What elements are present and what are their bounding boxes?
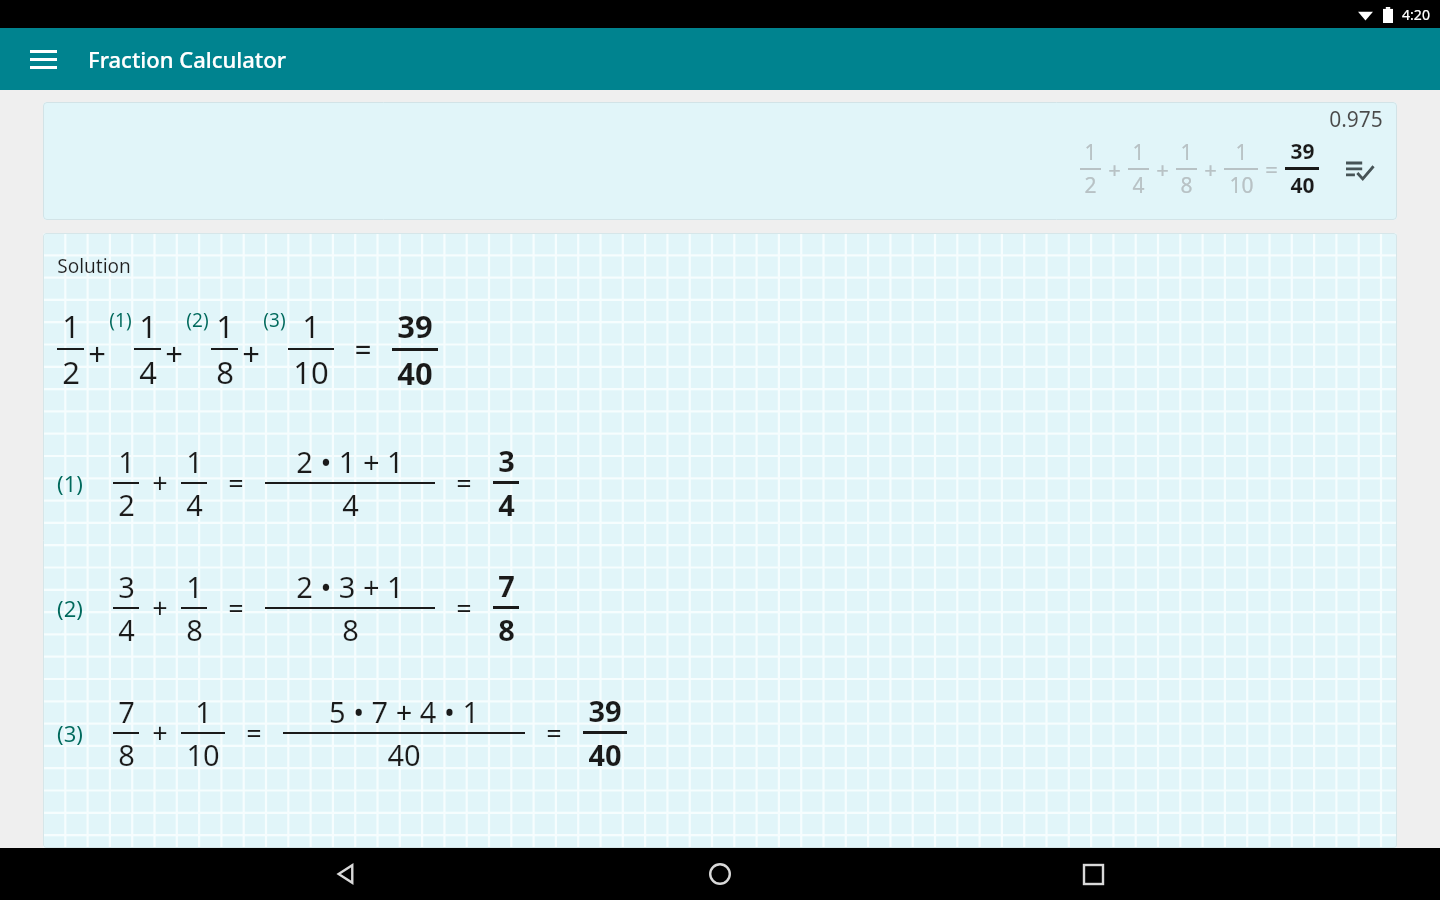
staticText: +	[152, 589, 168, 626]
staticText: (1)	[57, 468, 83, 498]
staticText: 1	[216, 305, 234, 347]
staticText: Solution	[57, 253, 131, 279]
staticText: +	[1204, 154, 1217, 184]
staticText: =	[456, 589, 472, 626]
staticText: 2	[62, 351, 80, 393]
staticText: =	[456, 464, 472, 501]
staticText: 39	[588, 691, 622, 730]
button[interactable]: Recent apps	[1067, 848, 1119, 900]
staticText: 2 • 3 + 1	[296, 567, 404, 606]
staticText: (2)	[57, 593, 83, 623]
staticText: 39	[397, 305, 433, 347]
button[interactable]: Back	[321, 848, 373, 900]
staticText: 4	[342, 485, 359, 524]
staticText: 0.975	[1329, 105, 1383, 134]
staticText: +	[1108, 154, 1121, 184]
staticText: 40	[1290, 171, 1315, 200]
staticText: 4	[498, 485, 515, 524]
staticText: 40	[397, 352, 433, 394]
staticText: 40	[387, 735, 421, 774]
staticText: 1	[118, 442, 135, 481]
staticText: 1	[186, 442, 203, 481]
staticText: 2	[1084, 171, 1097, 200]
staticText: 10	[1229, 171, 1254, 200]
staticText: 4	[1132, 171, 1145, 200]
staticText: 4	[139, 351, 157, 393]
staticText: +	[165, 332, 183, 374]
staticText: 1	[62, 305, 80, 347]
staticText: =	[546, 714, 562, 751]
staticText: (2)	[186, 307, 209, 333]
staticText: +	[152, 464, 168, 501]
staticText: 1	[139, 305, 157, 347]
button[interactable]: Open navigation menu	[18, 34, 68, 84]
staticText: =	[246, 714, 262, 751]
button[interactable]: Home	[694, 848, 746, 900]
staticText: 1	[1235, 138, 1248, 167]
staticText: 1	[302, 305, 320, 347]
staticText: 5 • 7 + 4 • 1	[329, 692, 479, 731]
staticText: 2 • 1 + 1	[296, 442, 404, 481]
staticText: 4	[186, 485, 203, 524]
staticText: +	[152, 714, 168, 751]
staticText: 4	[118, 610, 135, 649]
staticText: 1	[1132, 138, 1145, 167]
staticText: (1)	[109, 307, 132, 333]
staticText: 10	[186, 735, 220, 774]
staticText: 3	[118, 567, 135, 606]
staticText: 10	[293, 351, 329, 393]
staticText: 3	[498, 441, 515, 480]
staticText: (3)	[263, 307, 286, 333]
staticText: 8	[118, 735, 135, 774]
staticText: +	[1156, 154, 1169, 184]
staticText: 1	[1180, 138, 1193, 167]
staticText: =	[228, 589, 244, 626]
staticText: +	[88, 332, 106, 374]
button[interactable]: Show solution steps	[1337, 147, 1381, 191]
staticText: =	[354, 329, 372, 370]
staticText: Fraction Calculator	[88, 44, 286, 74]
staticText: 39	[1290, 137, 1315, 166]
staticText: 1	[1084, 138, 1097, 167]
button[interactable]: 0.975	[43, 102, 1397, 220]
staticText: 1	[186, 567, 203, 606]
staticText: +	[242, 332, 260, 374]
staticText: 8	[216, 351, 234, 393]
staticText: 8	[498, 610, 515, 649]
staticText: =	[228, 464, 244, 501]
staticText: 8	[1180, 171, 1193, 200]
staticText: 40	[588, 735, 622, 774]
staticText: (3)	[57, 718, 83, 748]
staticText: 1	[195, 692, 212, 731]
staticText: 4:20	[1402, 5, 1430, 24]
staticText: 7	[498, 566, 515, 605]
staticText: 2	[118, 485, 135, 524]
staticText: 8	[186, 610, 203, 649]
staticText: 8	[342, 610, 359, 649]
staticText: 7	[118, 692, 135, 731]
staticText: =	[1265, 154, 1278, 184]
